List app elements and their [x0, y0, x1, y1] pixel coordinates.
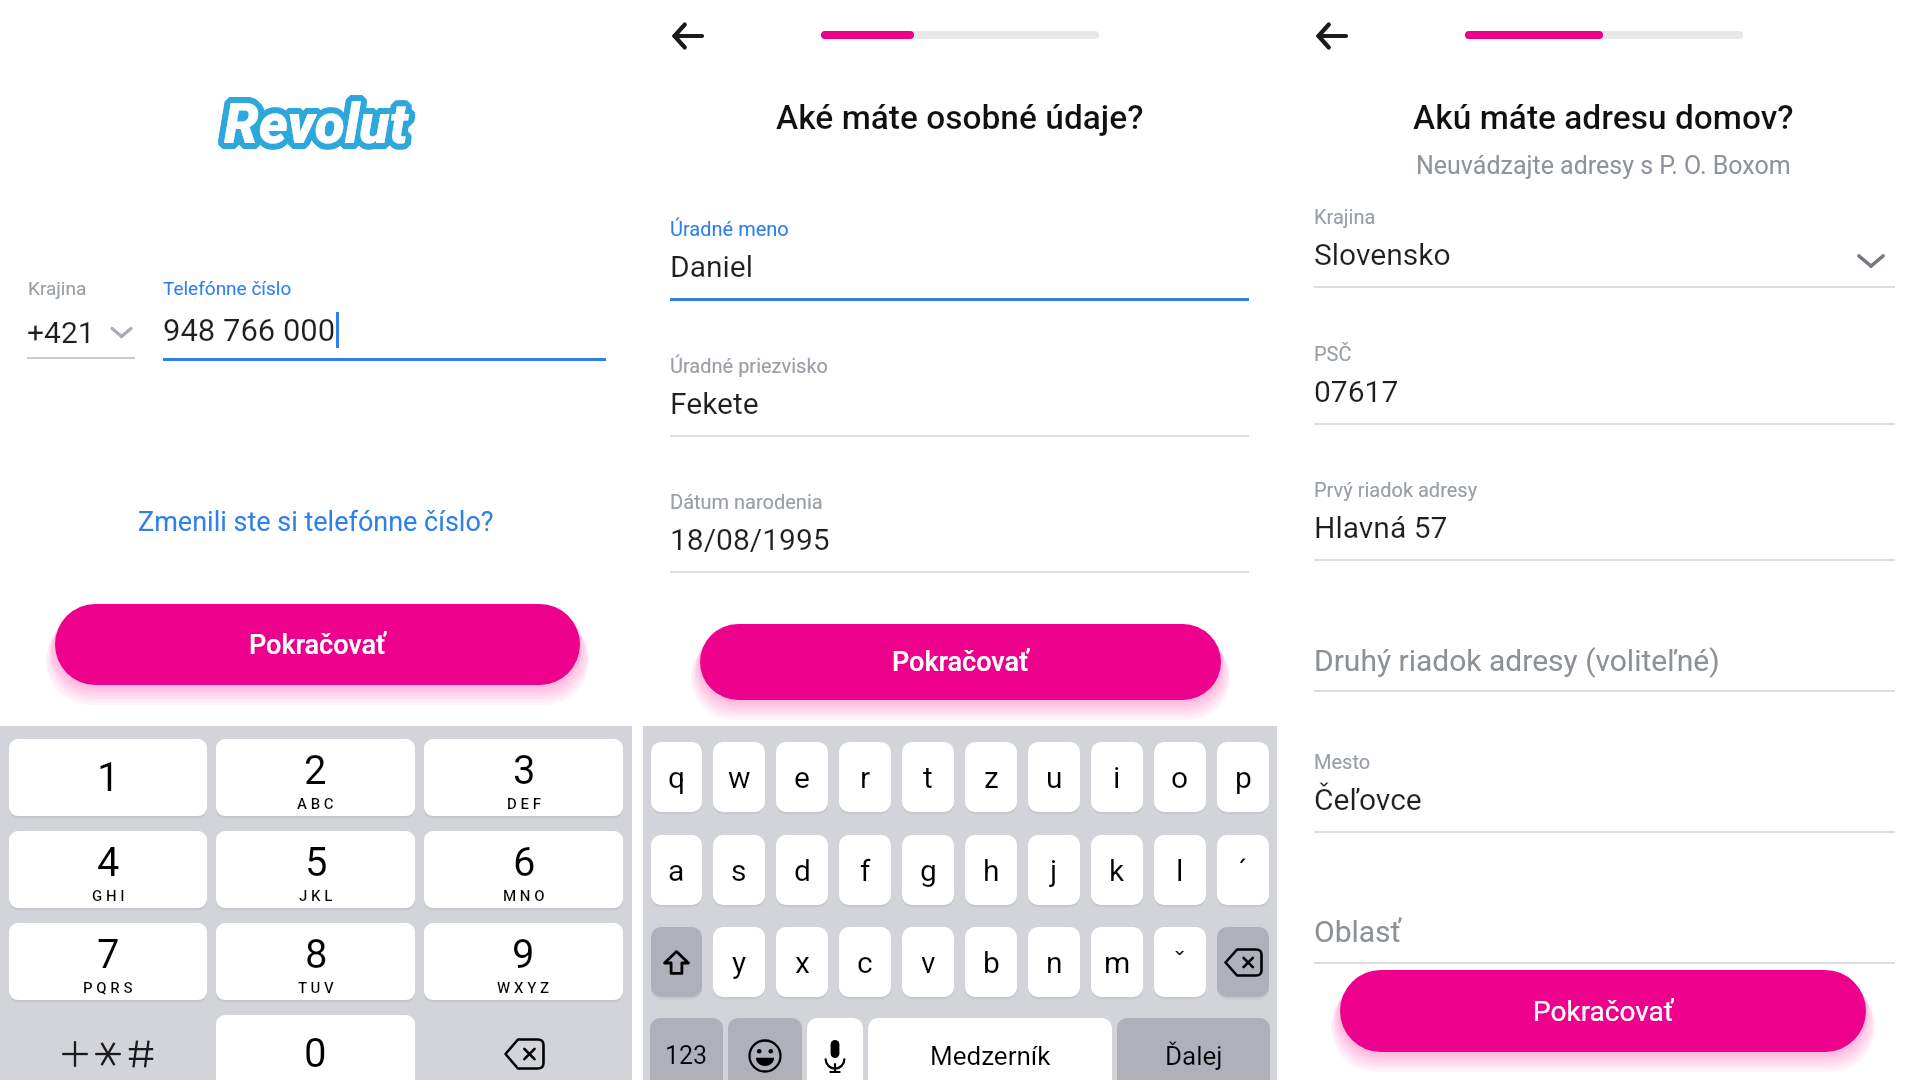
button[interactable]: Oblasť [1314, 907, 1895, 966]
staticText: Daniel [670, 249, 754, 284]
staticText: y [732, 945, 747, 980]
button[interactable]: j [1028, 835, 1080, 905]
button[interactable]: Telefónne číslo [163, 272, 606, 361]
button[interactable]: 2 [216, 739, 415, 816]
staticText: M N O [503, 887, 545, 905]
button[interactable]: s [713, 835, 765, 905]
staticText: Dátum narodenia [670, 490, 823, 513]
button[interactable]: Medzerník [868, 1018, 1112, 1080]
button[interactable]: y [713, 927, 765, 997]
staticText: ˇ [1173, 945, 1187, 980]
staticText: 123 [665, 1041, 708, 1070]
button[interactable]: Druhý riadok adresy (voliteľné) [1314, 636, 1895, 694]
staticText: A B C [297, 795, 334, 813]
staticText: 6 [513, 839, 536, 886]
button[interactable]: u [1028, 742, 1080, 812]
staticText: Revolut [226, 95, 410, 159]
staticText: Revolut [230, 94, 414, 158]
button[interactable]: Úradné meno [670, 210, 1249, 300]
button[interactable]: Pokračovať [55, 604, 580, 685]
button[interactable]: c [839, 927, 891, 997]
button[interactable]: Krajina [1314, 198, 1895, 288]
button[interactable]: Dátum narodenia [670, 483, 1249, 573]
staticText: b [983, 945, 1000, 980]
button[interactable]: b [965, 927, 1017, 997]
button[interactable]: 9 [424, 923, 623, 1000]
button[interactable]: 1 [9, 739, 207, 816]
staticText: q [668, 760, 686, 795]
button[interactable]: f [839, 835, 891, 905]
button[interactable]: h [965, 835, 1017, 905]
button[interactable]: n [1028, 927, 1080, 997]
staticText: Slovensko [1314, 237, 1451, 272]
staticText: 0 [304, 1030, 327, 1077]
staticText: Revolut [230, 92, 414, 156]
staticText: l [1176, 853, 1184, 888]
button[interactable]: 5 [216, 831, 415, 908]
staticText: 4 [97, 839, 120, 886]
button[interactable]: Pokračovať [1340, 970, 1866, 1052]
staticText: o [1171, 760, 1189, 795]
button[interactable]: Voice input [807, 1018, 863, 1080]
button[interactable]: ´ [1217, 835, 1269, 905]
button[interactable]: p [1217, 742, 1269, 812]
button[interactable]: Backspace [424, 1015, 623, 1080]
button[interactable]: Mesto [1314, 743, 1895, 833]
button[interactable]: v [902, 927, 954, 997]
button[interactable]: a [651, 835, 702, 905]
staticText: W X Y Z [497, 979, 550, 997]
button[interactable]: 7 [9, 923, 207, 1000]
staticText: ´ [1238, 853, 1248, 888]
button[interactable]: Backspace [1217, 927, 1269, 997]
staticText: Prvý riadok adresy [1314, 478, 1478, 501]
button[interactable]: Prvý riadok adresy [1314, 471, 1895, 561]
button[interactable]: PSČ [1314, 335, 1895, 425]
button[interactable]: Back [1313, 17, 1351, 55]
button[interactable]: k [1091, 835, 1143, 905]
button[interactable]: Shift [651, 927, 702, 997]
button[interactable]: g [902, 835, 954, 905]
staticText: Revolut [227, 92, 411, 156]
button[interactable]: x [776, 927, 828, 997]
button[interactable]: 6 [424, 831, 623, 908]
staticText: G H I [92, 887, 125, 905]
button[interactable]: 3 [424, 739, 623, 816]
staticText: Revolut [226, 89, 410, 153]
button[interactable]: 0 [216, 1015, 415, 1080]
staticText: 1 [97, 754, 120, 801]
staticText: Revolut [222, 89, 406, 153]
button[interactable]: i [1091, 742, 1143, 812]
staticText: Revolut [228, 96, 412, 160]
button[interactable]: Zmenili ste si telefónne číslo? [138, 506, 494, 538]
button[interactable]: Ďalej [1117, 1018, 1270, 1080]
staticText: PSČ [1314, 342, 1352, 365]
staticText: n [1046, 945, 1063, 980]
staticText: Revolut [222, 95, 406, 159]
button[interactable]: 4 [9, 831, 207, 908]
staticText: w [728, 760, 751, 795]
button[interactable]: r [839, 742, 891, 812]
button[interactable]: Plus star hash [9, 1015, 207, 1080]
staticText: 07617 [1314, 374, 1399, 409]
button[interactable]: 123 [650, 1018, 723, 1080]
staticText: Revolut [222, 98, 406, 162]
staticText: z [984, 760, 999, 795]
button[interactable]: 8 [216, 923, 415, 1000]
button[interactable]: Emoji [728, 1018, 802, 1080]
button[interactable]: t [902, 742, 954, 812]
button[interactable]: e [776, 742, 828, 812]
button[interactable]: l [1154, 835, 1206, 905]
button[interactable]: Úradné priezvisko [670, 347, 1249, 437]
button[interactable]: d [776, 835, 828, 905]
button[interactable]: w [713, 742, 765, 812]
button[interactable]: Back [669, 17, 707, 55]
button[interactable]: Pokračovať [700, 624, 1221, 700]
button[interactable]: q [651, 742, 702, 812]
button[interactable]: ˇ [1154, 927, 1206, 997]
button[interactable]: z [965, 742, 1017, 812]
staticText: Krajina [1314, 205, 1376, 228]
button[interactable]: o [1154, 742, 1206, 812]
button[interactable]: m [1091, 927, 1143, 997]
button[interactable]: Krajina [27, 272, 137, 360]
staticText: Revolut [221, 92, 405, 156]
